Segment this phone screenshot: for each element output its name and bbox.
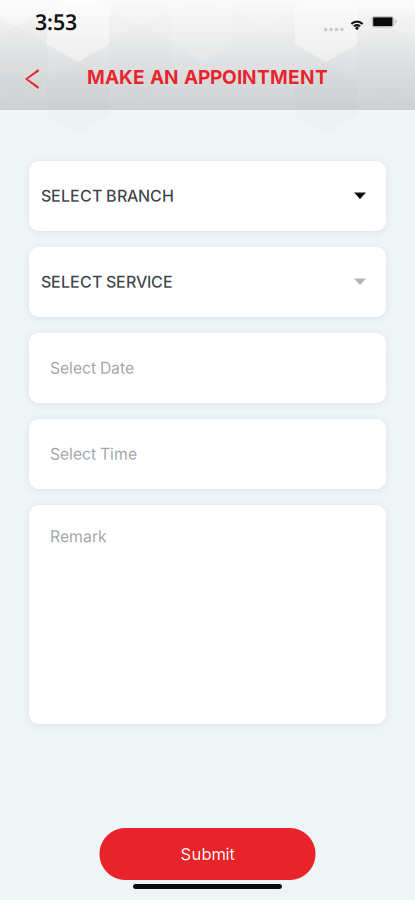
button[interactable]: SELECT SERVICE xyxy=(29,247,386,317)
button[interactable]: Back xyxy=(0,44,53,110)
staticText: SELECT BRANCH xyxy=(41,186,174,206)
staticText: Remark xyxy=(50,527,107,546)
button[interactable]: Select Time xyxy=(29,419,386,489)
staticText: Select Time xyxy=(50,444,137,463)
staticText: SELECT SERVICE xyxy=(41,272,173,292)
button[interactable]: Select Date xyxy=(29,333,386,403)
staticText: Select Date xyxy=(50,358,134,377)
staticText: Submit xyxy=(180,844,234,864)
button[interactable]: Submit xyxy=(99,828,315,880)
button[interactable]: SELECT BRANCH xyxy=(29,161,386,231)
staticText: 3:53 xyxy=(35,8,77,36)
staticText: MAKE AN APPOINTMENT xyxy=(87,65,328,89)
button[interactable]: Remark xyxy=(29,505,386,724)
